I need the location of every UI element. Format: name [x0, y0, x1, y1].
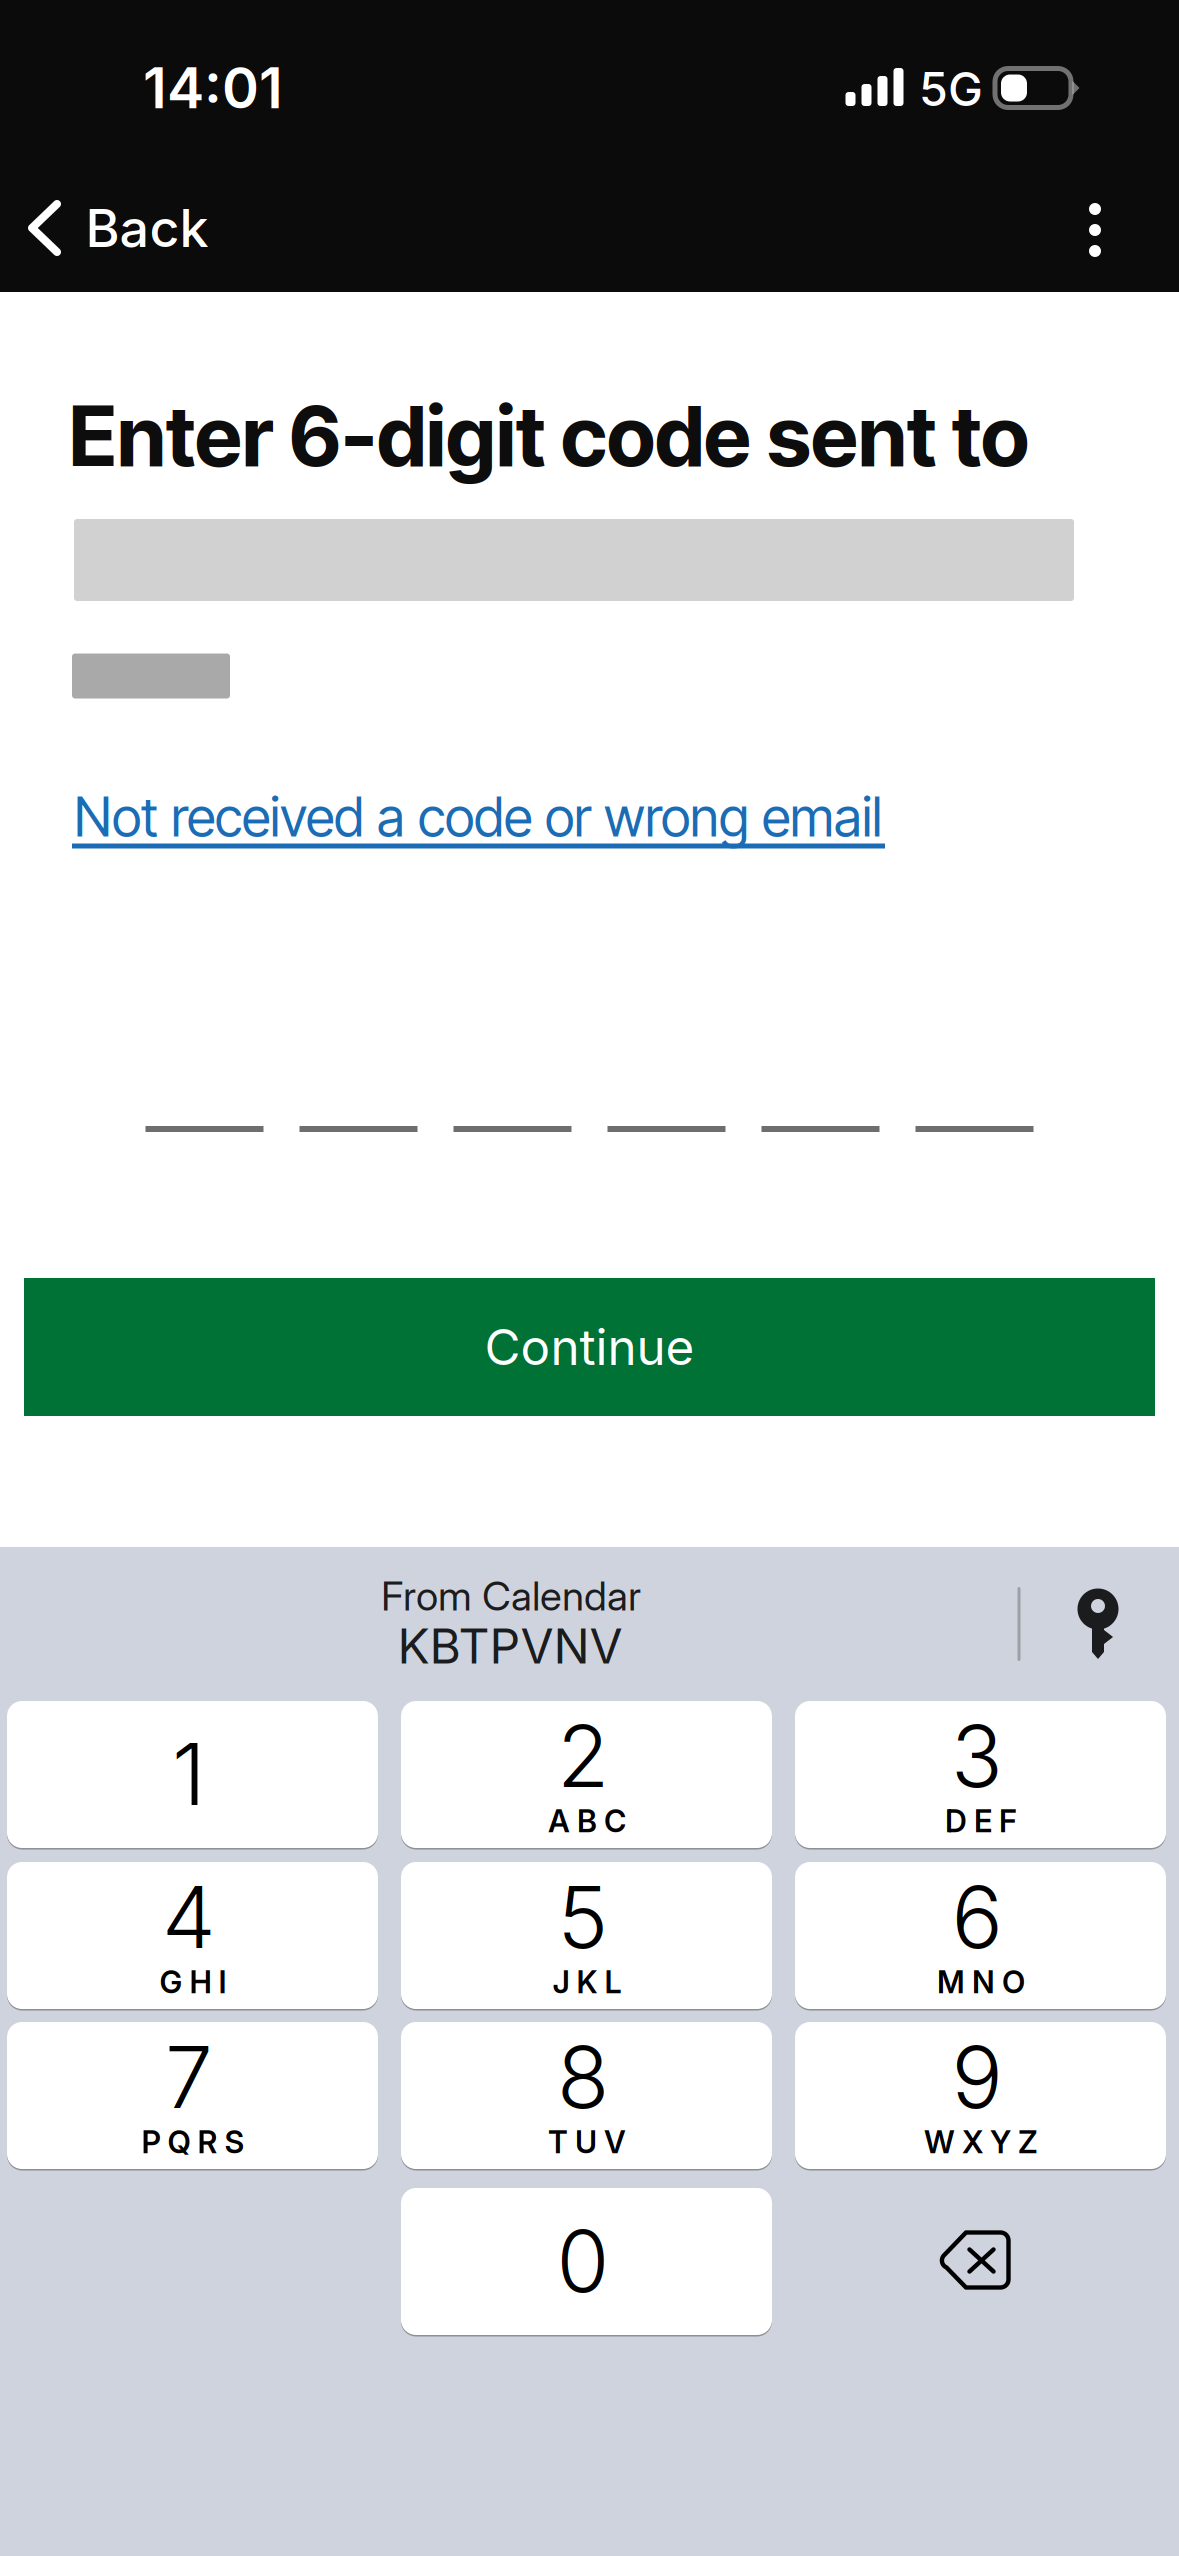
staticText: A B C	[548, 1802, 626, 1839]
staticText: 3	[951, 1704, 1003, 1808]
button[interactable]: 0	[401, 2188, 772, 2338]
button[interactable]: Delete	[789, 2188, 1160, 2335]
staticText: M N O	[937, 1963, 1025, 2000]
staticText: Not received a code or wrong email	[74, 785, 882, 849]
staticText: Back	[85, 196, 208, 259]
button[interactable]: Continue	[24, 1278, 1155, 1416]
staticText: Continue	[484, 1317, 694, 1377]
staticText: T U V	[548, 2123, 626, 2160]
staticText: 5G	[919, 61, 983, 117]
staticText: P Q R S	[141, 2123, 244, 2160]
button[interactable]: 5	[401, 1862, 772, 2012]
staticText: G H I	[159, 1963, 226, 2000]
staticText: W X Y Z	[924, 2123, 1038, 2160]
staticText: 9	[951, 2025, 1002, 2129]
button[interactable]: More options	[1040, 168, 1150, 292]
button[interactable]: 2	[401, 1701, 772, 1851]
button[interactable]: Back	[0, 166, 248, 290]
button[interactable]: 3	[795, 1701, 1166, 1851]
staticText: D E F	[945, 1802, 1017, 1839]
staticText: 2	[557, 1704, 609, 1808]
staticText: 0	[556, 2209, 609, 2313]
button[interactable]: 1	[7, 1701, 378, 1851]
button[interactable]: Not received a code or wrong email	[72, 784, 888, 870]
button[interactable]: 4	[7, 1862, 378, 2012]
staticText: 7	[165, 2025, 213, 2129]
button[interactable]: 7	[7, 2022, 378, 2172]
staticText: 6	[951, 1865, 1002, 1969]
staticText: 8	[557, 2025, 609, 2129]
button[interactable]: Passwords	[1044, 1569, 1154, 1679]
staticText: 14:01	[143, 54, 283, 122]
staticText: J K L	[552, 1963, 621, 2000]
staticText: 5	[557, 1865, 608, 1969]
staticText: 1	[172, 1722, 206, 1826]
staticText: From Calendar	[381, 1572, 641, 1620]
button[interactable]: 6	[795, 1862, 1166, 2012]
staticText: 4	[162, 1865, 216, 1969]
staticText: KBTPVNV	[397, 1617, 622, 1675]
button[interactable]: 8	[401, 2022, 772, 2172]
staticText: Enter 6-digit code sent to	[69, 386, 1029, 486]
button[interactable]: 9	[795, 2022, 1166, 2172]
